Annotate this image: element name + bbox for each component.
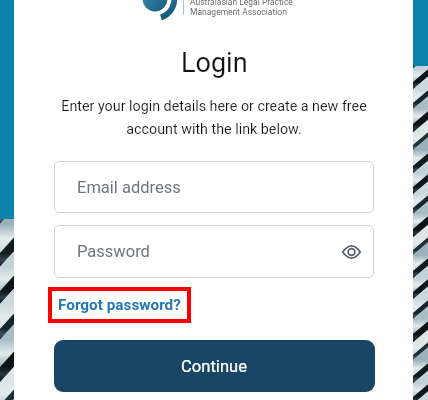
button[interactable]: Email address xyxy=(54,161,374,213)
button[interactable]: Forgot password? xyxy=(48,287,191,323)
staticText: Management Association xyxy=(190,7,287,17)
staticText: Login xyxy=(181,47,248,79)
button[interactable]: Password xyxy=(54,225,374,278)
staticText: Australasian Legal Practice xyxy=(190,0,293,7)
button[interactable]: Continue xyxy=(54,340,375,392)
staticText: Enter your login details here or create … xyxy=(61,98,367,138)
button[interactable]: Show password xyxy=(333,234,369,270)
staticText: Password xyxy=(77,242,150,261)
staticText: Email address xyxy=(77,178,181,197)
staticText: Forgot password? xyxy=(58,296,181,314)
staticText: Continue xyxy=(181,357,248,376)
